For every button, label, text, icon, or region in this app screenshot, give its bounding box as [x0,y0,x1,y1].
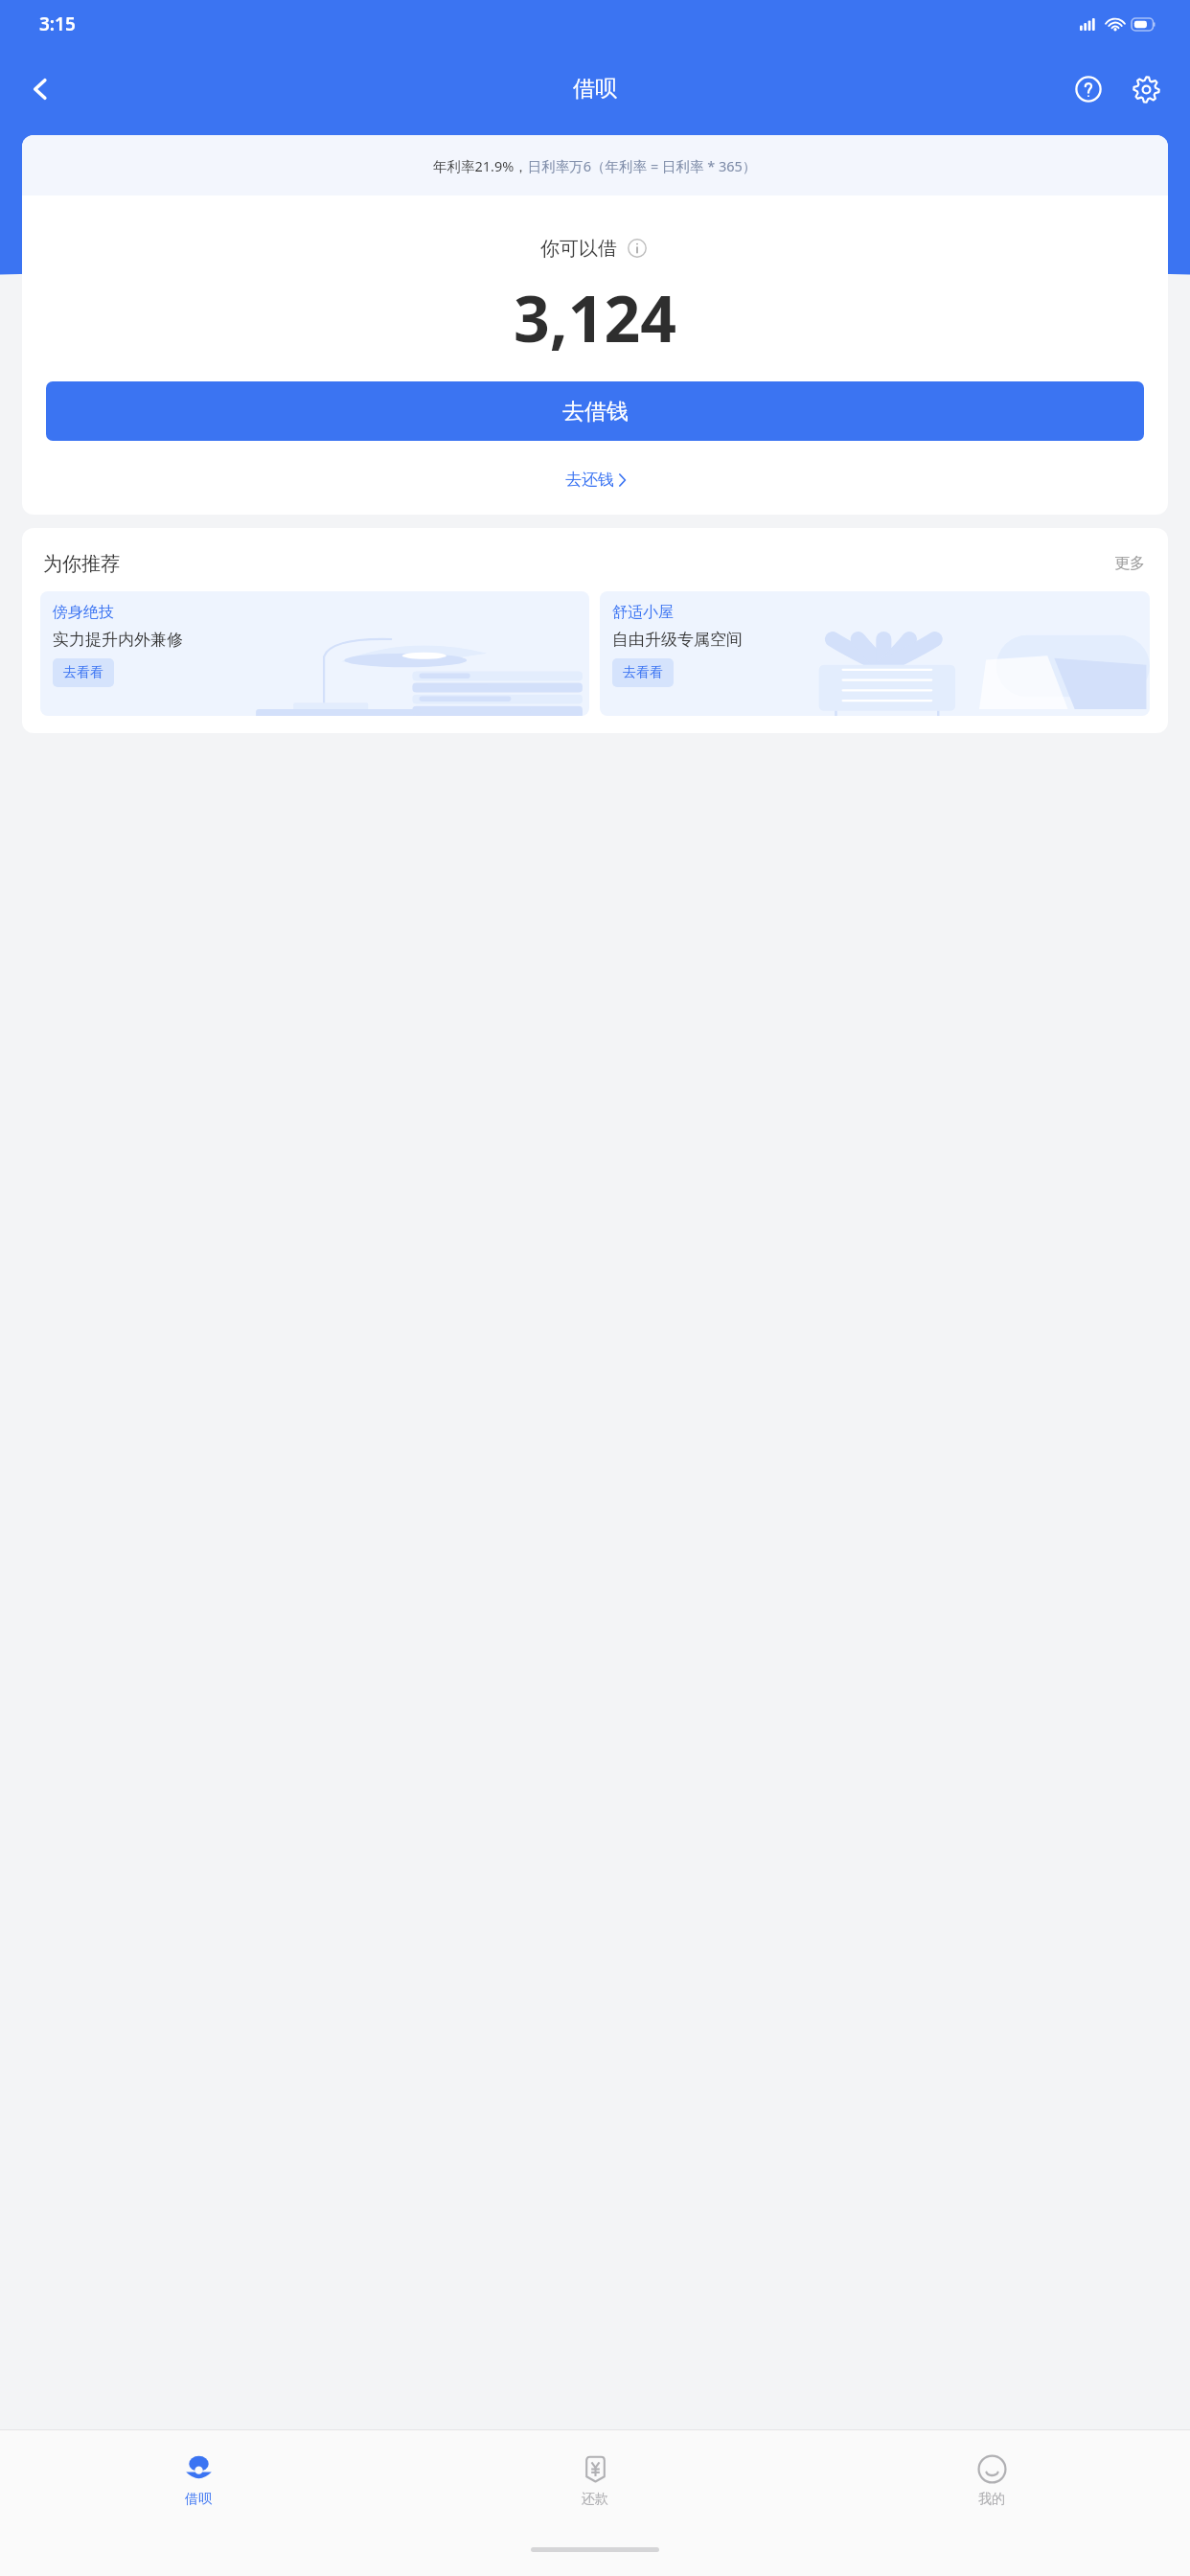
button[interactable]: 借呗 [0,2430,397,2531]
button[interactable]: 舒适小屋 [600,591,1150,716]
staticText: 为你推荐 [43,552,120,576]
staticText: 去借钱 [562,398,629,425]
staticText: 你可以借 [540,237,617,261]
button[interactable]: 我的 [793,2430,1190,2531]
staticText: 我的 [978,2491,1005,2508]
staticText: 年利率21.9%，日利率万6（年利率 = 日利率 * 365） [433,156,757,175]
button[interactable]: 年利率21.9%，日利率万6（年利率 = 日利率 * 365） [22,135,1168,195]
staticText: 3:15 [39,11,76,36]
button[interactable]: 去看看 [623,664,663,681]
staticText: 舒适小屋 [612,603,674,622]
button[interactable]: 去看看 [63,664,103,681]
staticText: 3,124 [22,274,1168,360]
button[interactable]: 去借钱 [46,381,1144,441]
button[interactable]: Back [13,62,67,116]
staticText: 去看看 [63,664,103,681]
staticText: 自由升级专属空间 [612,630,743,650]
button[interactable]: 还款 [397,2430,793,2531]
button[interactable]: 去还钱 [565,470,626,490]
staticText: 还款 [582,2491,608,2508]
staticText: 更多 [1114,554,1145,573]
staticText: 借呗 [573,75,617,103]
button[interactable]: 更多 [1114,554,1145,573]
staticText: 去看看 [623,664,663,681]
staticText: 借呗 [185,2491,212,2508]
button[interactable]: Info [625,236,650,261]
staticText: 傍身绝技 [53,603,114,622]
button[interactable]: Settings [1123,66,1169,112]
staticText: 去还钱 [565,470,614,490]
button[interactable]: Help [1065,66,1111,112]
button[interactable]: 傍身绝技 [40,591,589,716]
staticText: 实力提升内外兼修 [53,630,183,650]
